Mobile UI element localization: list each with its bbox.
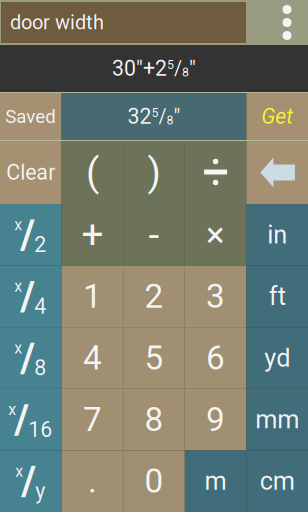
button[interactable]: cm <box>246 450 308 512</box>
button[interactable]: ( <box>62 141 123 204</box>
staticText: 7 <box>83 400 102 439</box>
button[interactable]: x over 8 <box>0 327 62 389</box>
button[interactable]: Saved <box>0 93 62 140</box>
staticText: 16 <box>28 417 52 442</box>
button[interactable]: door width <box>1 2 246 43</box>
button[interactable]: - <box>123 204 185 266</box>
staticText: × <box>206 214 225 255</box>
staticText: in <box>267 220 287 250</box>
staticText: 0 <box>144 462 163 501</box>
staticText: " <box>173 104 180 129</box>
button[interactable]: x over y <box>0 450 62 512</box>
button[interactable]: m <box>185 450 246 512</box>
staticText: mm <box>255 405 299 434</box>
button[interactable]: 0 <box>123 450 185 512</box>
staticText: 8 <box>182 65 189 80</box>
button[interactable]: 2 <box>123 266 185 327</box>
button[interactable]: in <box>246 204 308 266</box>
button[interactable]: 5 <box>123 327 185 389</box>
button[interactable]: ) <box>123 141 185 204</box>
staticText: x <box>14 277 22 296</box>
button[interactable]: Get <box>246 93 308 140</box>
staticText: / <box>21 458 36 505</box>
staticText: ft <box>269 282 286 311</box>
button[interactable]: Clear <box>0 141 62 204</box>
staticText: m <box>205 466 227 496</box>
staticText: - <box>148 212 159 257</box>
staticText: Clear <box>6 160 55 185</box>
staticText: x <box>14 339 22 357</box>
staticText: x <box>14 215 22 234</box>
staticText: 9 <box>206 400 225 439</box>
staticText: cm <box>260 466 295 496</box>
staticText: 5 <box>144 338 163 378</box>
staticText: 32 <box>127 104 151 129</box>
button[interactable]: Backspace <box>246 141 308 204</box>
staticText: ( <box>86 150 99 195</box>
staticText: 6 <box>206 338 225 378</box>
staticText: x <box>8 400 16 419</box>
staticText: " <box>189 56 196 81</box>
staticText: 8 <box>34 355 46 380</box>
staticText: . <box>88 462 97 501</box>
button[interactable]: Divide <box>185 141 246 204</box>
staticText: / <box>20 211 35 258</box>
staticText: door width <box>10 11 104 34</box>
staticText: 8 <box>166 113 173 128</box>
staticText: ) <box>147 150 160 195</box>
button[interactable]: 9 <box>185 389 246 450</box>
staticText: / <box>174 57 182 80</box>
staticText: + <box>81 212 103 257</box>
button[interactable]: mm <box>246 389 308 450</box>
button[interactable]: + <box>62 204 123 266</box>
staticText: 4 <box>34 294 46 319</box>
button[interactable]: 4 <box>62 327 123 389</box>
staticText: 2 <box>144 277 163 316</box>
button[interactable]: x over 4 <box>0 266 62 327</box>
button[interactable]: 8 <box>123 389 185 450</box>
button[interactable]: 3 <box>185 266 246 327</box>
button[interactable]: yd <box>246 327 308 389</box>
button[interactable]: ft <box>246 266 308 327</box>
staticText: 4 <box>83 338 102 378</box>
staticText: / <box>20 273 35 320</box>
staticText: 1 <box>83 277 102 316</box>
button[interactable]: 7 <box>62 389 123 450</box>
staticText: / <box>158 105 166 128</box>
staticText: 8 <box>144 400 163 439</box>
staticText: Saved <box>5 106 56 127</box>
staticText: Get <box>261 104 293 129</box>
staticText: y <box>35 479 45 504</box>
button[interactable]: More options <box>266 0 308 45</box>
staticText: 2 <box>34 232 46 257</box>
staticText: 5 <box>167 57 174 72</box>
staticText: / <box>20 335 35 381</box>
staticText: 3 <box>206 277 225 316</box>
button[interactable]: × <box>185 204 246 266</box>
button[interactable]: x over 2 <box>0 204 62 266</box>
button[interactable]: 1 <box>62 266 123 327</box>
staticText: x <box>15 462 23 481</box>
button[interactable]: x over 16 <box>0 389 62 450</box>
staticText: yd <box>264 343 290 373</box>
button[interactable]: 6 <box>185 327 246 389</box>
staticText: 30"+2 <box>112 56 167 81</box>
staticText: 5 <box>151 105 158 120</box>
button[interactable]: . <box>62 450 123 512</box>
staticText: / <box>14 396 29 443</box>
